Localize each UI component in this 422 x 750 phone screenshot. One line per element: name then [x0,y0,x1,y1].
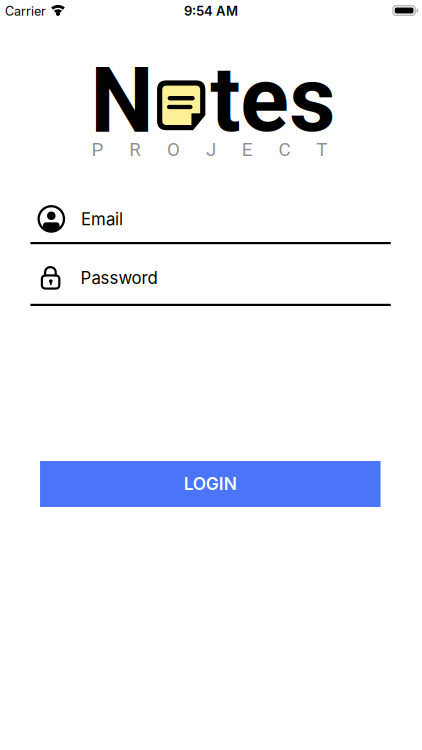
staticText: T [316,139,327,160]
staticText: LOGIN [184,473,237,494]
button[interactable]: LOGIN [40,461,381,507]
staticText: P [91,139,103,160]
staticText: tes [210,47,335,153]
staticText: Carrier [5,4,46,19]
staticText: R [129,139,141,160]
button[interactable]: Password [30,255,391,306]
button[interactable]: Email [30,193,391,244]
staticText: E [242,139,253,160]
staticText: Password [80,268,157,288]
staticText: C [278,139,290,160]
staticText: N [90,48,154,154]
staticText: J [206,139,216,160]
staticText: Email [81,209,123,229]
staticText: O [167,139,180,160]
staticText: 9:54 AM [184,3,238,19]
